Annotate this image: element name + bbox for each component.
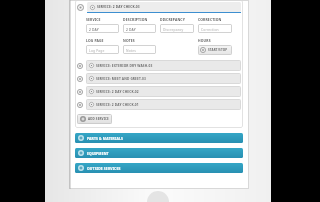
- button[interactable]: SERVICE: 2 DAY CHECK-01: [86, 99, 241, 110]
- button[interactable]: EQUIPMENT: [75, 148, 243, 158]
- staticText: PARTS & MATERIALS: [87, 136, 124, 141]
- button[interactable]: 2 DAY CHECK-03: [123, 24, 156, 33]
- button[interactable]: Log Page: [86, 45, 119, 54]
- button[interactable]: SERVICE: EXTERIOR DRY WASH-03: [86, 60, 241, 71]
- button[interactable]: SERVICE: MEET AND GREET-03: [86, 73, 241, 84]
- button[interactable]: 2 DAY CHECK-03: [86, 24, 119, 33]
- staticText: 2 DAY CHECK-03: [89, 27, 116, 31]
- staticText: ADD SERVICE: [88, 117, 109, 121]
- staticText: NOTES: [123, 38, 135, 43]
- button[interactable]: SERVICE: 2 DAY CHECK-02: [86, 86, 241, 97]
- button[interactable]: PARTS & MATERIALS: [75, 133, 243, 143]
- staticText: Log Page: [89, 48, 105, 52]
- button[interactable]: START/STOP: [198, 45, 232, 55]
- button[interactable]: OUTSIDE SERVICES: [75, 163, 243, 173]
- staticText: LOG PAGE: [86, 38, 104, 43]
- button[interactable]: ADD SERVICE: [77, 114, 112, 124]
- staticText: CORRECTION: [198, 17, 222, 22]
- staticText: START/STOP: [208, 48, 228, 52]
- staticText: OUTSIDE SERVICES: [87, 166, 121, 171]
- staticText: DISCREPANCY: [160, 17, 185, 22]
- button[interactable]: SERVICE: 2 DAY CHECK-03: [87, 2, 241, 12]
- staticText: HOURS: [198, 38, 211, 43]
- button[interactable]: Correction: [198, 24, 232, 33]
- staticText: SERVICE: 2 DAY CHECK-02: [96, 90, 139, 94]
- staticText: SERVICE: EXTERIOR DRY WASH-03: [96, 64, 153, 68]
- staticText: Notes: [126, 48, 136, 52]
- staticText: 2 DAY CHECK-03: [126, 27, 153, 31]
- staticText: DESCRIPTION: [123, 17, 148, 22]
- staticText: SERVICE: 2 DAY CHECK-03: [97, 5, 140, 9]
- staticText: EQUIPMENT: [87, 151, 109, 156]
- staticText: SERVICE: [86, 17, 101, 22]
- button[interactable]: Discrepancy: [160, 24, 194, 33]
- staticText: Correction: [201, 27, 219, 31]
- button[interactable]: Notes: [123, 45, 156, 54]
- staticText: SERVICE: 2 DAY CHECK-01: [96, 103, 139, 107]
- staticText: SERVICE: MEET AND GREET-03: [96, 77, 146, 81]
- staticText: Discrepancy: [163, 27, 184, 31]
